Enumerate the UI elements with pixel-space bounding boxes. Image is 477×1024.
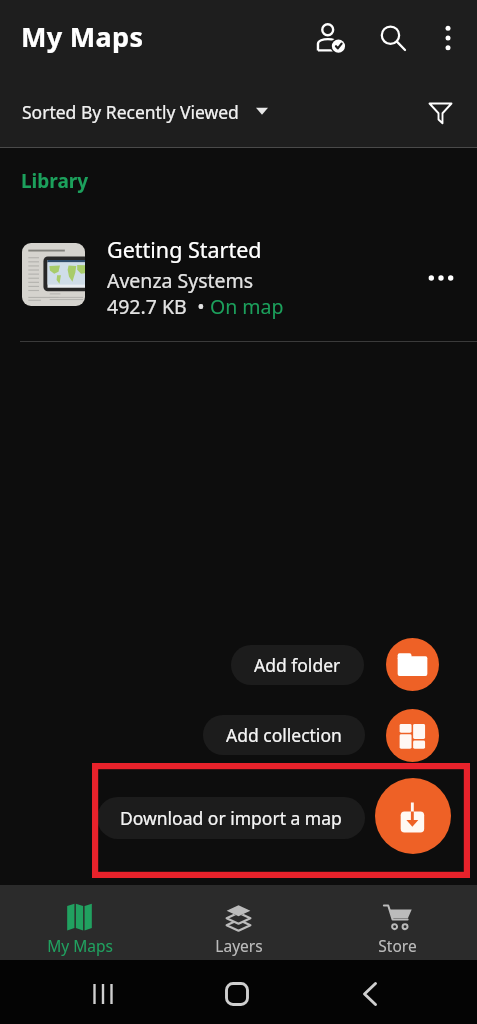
staticText: Library	[21, 168, 89, 194]
staticText: Add folder	[254, 653, 341, 677]
staticText: My Maps	[21, 18, 144, 55]
button[interactable]: Home	[213, 970, 261, 1018]
button[interactable]: Search	[369, 14, 417, 62]
staticText: My Maps	[47, 935, 113, 956]
staticText: Getting Started	[107, 235, 262, 264]
staticText: •	[187, 293, 210, 320]
staticText: On map	[210, 293, 284, 320]
button[interactable]: Layers	[159, 889, 318, 956]
button[interactable]: Account	[308, 14, 356, 62]
button[interactable]: Filter	[416, 88, 464, 136]
staticText: Layers	[215, 935, 263, 956]
button[interactable]: Add collection	[203, 715, 365, 755]
button[interactable]: Add collection	[386, 709, 439, 762]
button[interactable]: Store	[318, 889, 477, 956]
button[interactable]: Back	[346, 970, 394, 1018]
button[interactable]: Recents	[79, 970, 127, 1018]
staticText: 492.7 KB	[107, 293, 187, 320]
staticText: Store	[378, 935, 417, 956]
button[interactable]: Download or import a map	[97, 797, 365, 839]
staticText: Avenza Systems	[107, 267, 254, 294]
button[interactable]: More options	[424, 14, 472, 62]
button[interactable]: Download or import a map	[375, 778, 451, 854]
staticText: Sorted By Recently Viewed	[22, 100, 239, 124]
staticText: Download or import a map	[120, 806, 342, 830]
button[interactable]: Sorted By Recently Viewed	[0, 86, 282, 138]
button[interactable]: Add folder	[231, 645, 364, 685]
button[interactable]: Add folder	[386, 638, 439, 691]
button[interactable]: My Maps	[0, 889, 159, 956]
staticText: Add collection	[226, 723, 342, 747]
button[interactable]: Item options	[416, 253, 465, 302]
button[interactable]	[0, 227, 477, 323]
